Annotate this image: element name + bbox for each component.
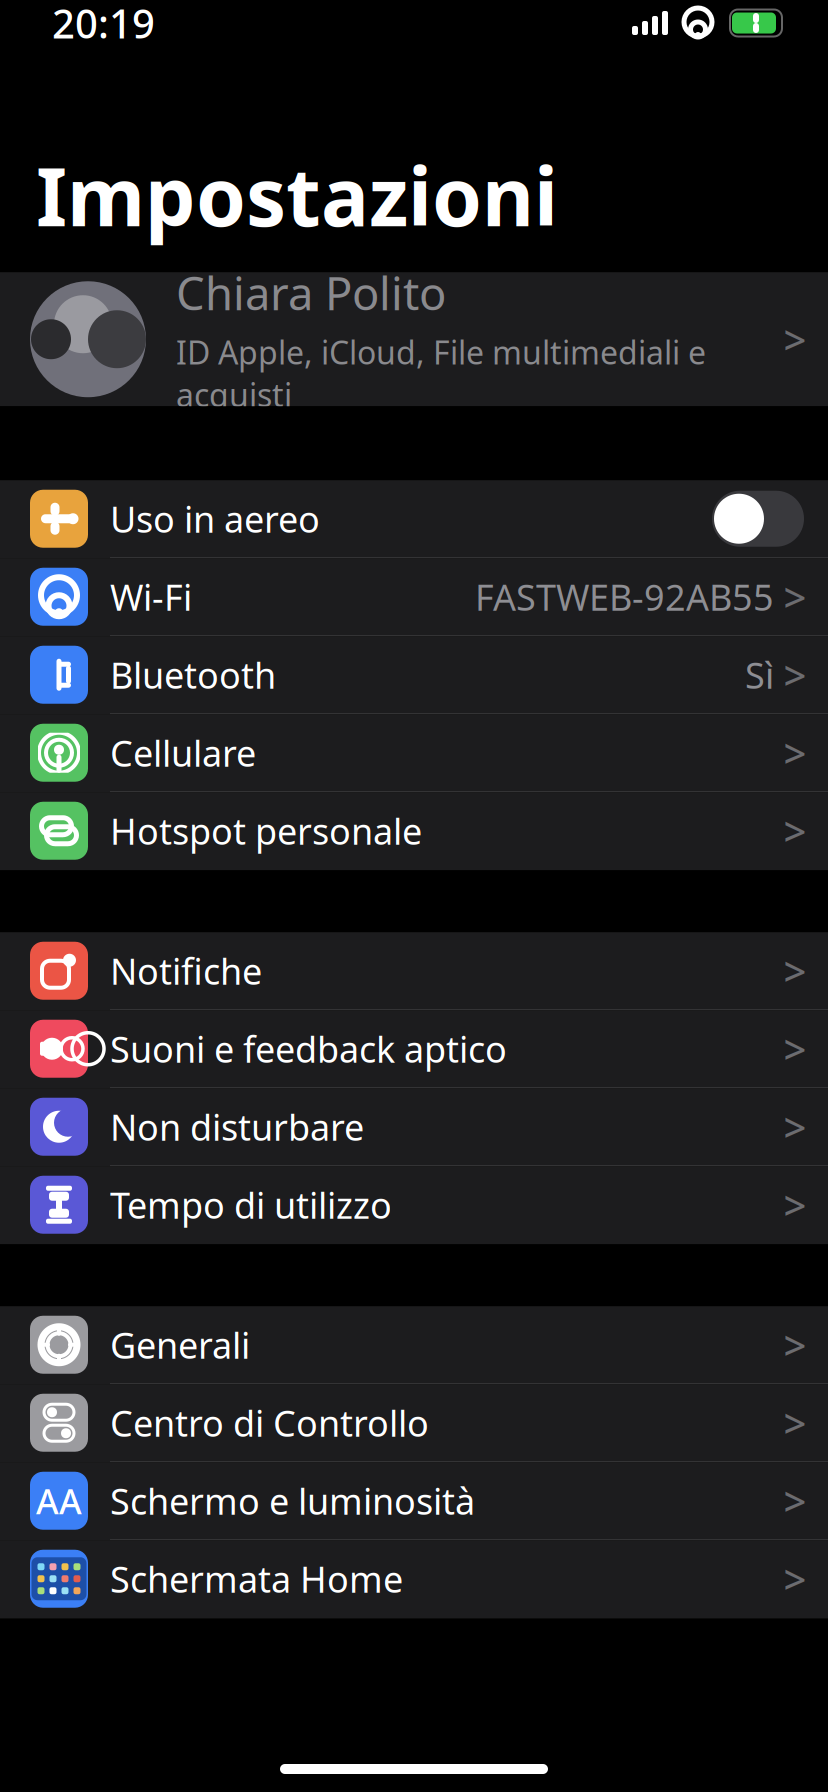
staticText: Uso in aereo xyxy=(110,495,320,543)
button[interactable]: Chiara Polito xyxy=(0,272,828,406)
staticText: Notifiche xyxy=(110,947,262,995)
staticText: > xyxy=(783,648,806,701)
staticText: Wi-Fi xyxy=(110,573,192,621)
staticText: Impostazioni xyxy=(36,142,558,248)
staticText: > xyxy=(783,1552,806,1605)
staticText: > xyxy=(783,804,806,857)
staticText: Generali xyxy=(110,1321,250,1369)
button[interactable]: Schermata Home xyxy=(0,1540,828,1618)
button[interactable]: Wi-Fi xyxy=(0,558,828,636)
staticText: > xyxy=(783,1022,806,1075)
staticText: Bluetooth xyxy=(110,651,276,699)
staticText: > xyxy=(783,1396,806,1449)
staticText: Tempo di utilizzo xyxy=(110,1181,392,1229)
staticText: > xyxy=(783,726,806,779)
staticText: Centro di Controllo xyxy=(110,1399,429,1447)
button[interactable]: Tempo di utilizzo xyxy=(0,1166,828,1244)
staticText: Sì xyxy=(745,651,774,699)
staticText: Hotspot personale xyxy=(110,807,422,855)
staticText: ID Apple, iCloud, File multimediali e ac… xyxy=(176,331,706,416)
staticText: > xyxy=(783,944,806,997)
button[interactable]: Generali xyxy=(0,1306,828,1384)
staticText: Chiara Polito xyxy=(176,263,446,323)
button[interactable]: Suoni e feedback aptico xyxy=(0,1010,828,1088)
staticText: > xyxy=(783,1474,806,1527)
staticText: > xyxy=(783,1100,806,1153)
button[interactable]: Hotspot personale xyxy=(0,792,828,870)
staticText: > xyxy=(783,1178,806,1231)
staticText: > xyxy=(783,570,806,623)
staticText: Cellulare xyxy=(110,729,256,777)
staticText: Suoni e feedback aptico xyxy=(110,1025,507,1073)
staticText: AA xyxy=(36,1478,82,1524)
staticText: FASTWEB-92AB55 xyxy=(475,573,774,621)
staticText: Schermata Home xyxy=(110,1555,403,1603)
button[interactable]: Bluetooth xyxy=(0,636,828,714)
button[interactable]: AA xyxy=(0,1462,828,1540)
button[interactable]: Centro di Controllo xyxy=(0,1384,828,1462)
staticText: Non disturbare xyxy=(110,1103,364,1151)
staticText: > xyxy=(783,1318,806,1371)
button[interactable]: Non disturbare xyxy=(0,1088,828,1166)
button[interactable]: Uso in aereo xyxy=(0,480,828,558)
staticText: Schermo e luminosità xyxy=(110,1477,475,1525)
staticText: > xyxy=(783,313,806,366)
button[interactable]: Cellulare xyxy=(0,714,828,792)
button[interactable]: Notifiche xyxy=(0,932,828,1010)
staticText: 20:19 xyxy=(52,0,155,49)
